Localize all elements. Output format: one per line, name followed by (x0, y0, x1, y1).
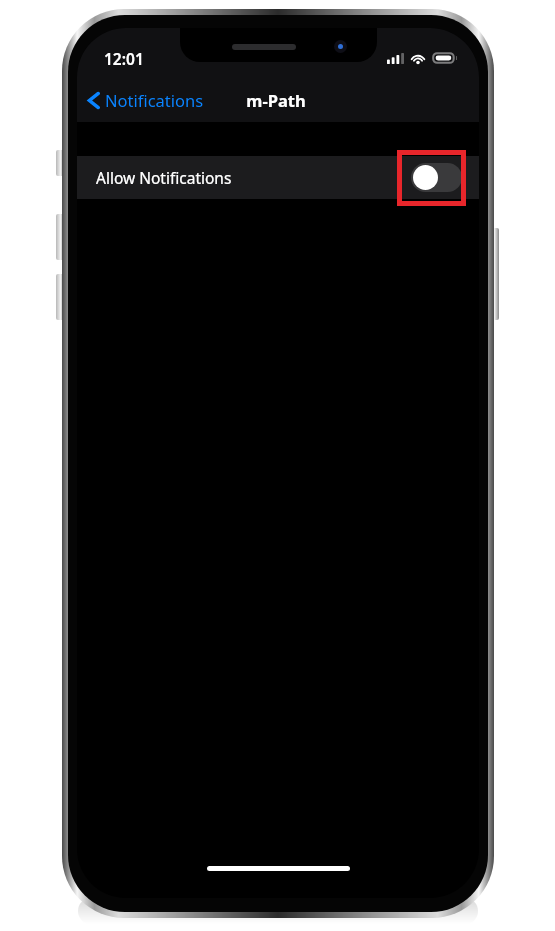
button[interactable]: Notifications (77, 82, 212, 118)
staticText: m-Path (246, 89, 306, 111)
button[interactable]: Allow Notifications (77, 156, 479, 199)
button[interactable]: Allow Notifications, off (411, 163, 462, 192)
staticText: 12:01 (104, 48, 144, 69)
staticText: Notifications (105, 89, 204, 111)
staticText: Allow Notifications (96, 167, 232, 188)
